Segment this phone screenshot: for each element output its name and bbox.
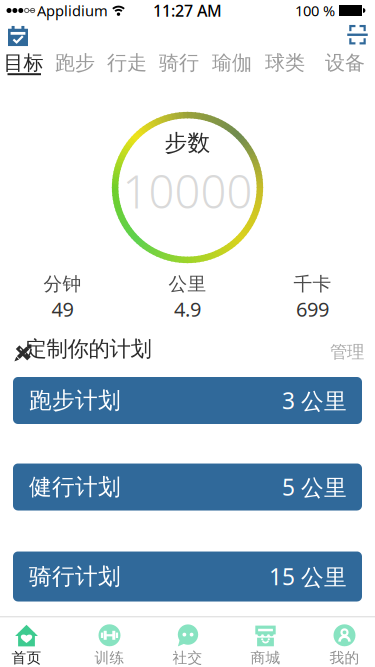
staticText: 社交	[172, 649, 202, 667]
staticText: 商城	[250, 649, 280, 667]
button[interactable]: 管理	[330, 341, 364, 363]
staticText: 目标	[3, 50, 43, 75]
staticText: 10000	[122, 161, 252, 221]
staticText: 球类	[265, 50, 305, 75]
staticText: 瑜伽	[212, 50, 252, 75]
staticText: Applidium	[37, 1, 108, 20]
button[interactable]: 跑步	[55, 50, 95, 75]
staticText: 跑步计划	[29, 387, 121, 414]
button[interactable]: 行走	[107, 50, 147, 75]
staticText: 健行计划	[29, 473, 121, 501]
button[interactable]: 健行计划	[13, 463, 362, 510]
staticText: 5 公里	[282, 472, 347, 502]
staticText: 3 公里	[282, 385, 347, 415]
button[interactable]: 骑行	[159, 50, 199, 75]
staticText: 699	[296, 296, 329, 322]
staticText: 骑行	[159, 50, 199, 75]
staticText: 15 公里	[269, 561, 347, 591]
staticText: 49	[51, 296, 73, 322]
button[interactable]: 社交	[172, 624, 202, 667]
staticText: 行走	[107, 50, 147, 75]
staticText: 首页	[11, 649, 41, 667]
button[interactable]: 我的	[329, 624, 359, 667]
staticText: 跑步	[55, 50, 95, 75]
staticText: 定制你的计划	[25, 336, 151, 362]
button[interactable]: 目标	[3, 50, 43, 75]
button[interactable]: 球类	[265, 50, 305, 75]
button[interactable]: 设备	[325, 50, 365, 75]
button[interactable]: 跑步计划	[13, 377, 362, 424]
button[interactable]: 日程	[8, 25, 28, 46]
staticText: 分钟	[43, 272, 81, 295]
button[interactable]: 训练	[94, 624, 124, 667]
staticText: 设备	[325, 50, 365, 75]
button[interactable]: 扫一扫	[347, 25, 368, 44]
staticText: 11:27 AM	[153, 0, 222, 21]
button[interactable]: 骑行计划	[13, 551, 362, 601]
staticText: 公里	[168, 272, 206, 295]
button[interactable]: 瑜伽	[212, 50, 252, 75]
button[interactable]: 商城	[250, 624, 280, 667]
staticText: 4.9	[174, 296, 201, 322]
staticText: 千卡	[293, 272, 331, 295]
staticText: 训练	[94, 649, 124, 667]
staticText: 骑行计划	[29, 563, 121, 590]
staticText: 步数	[164, 129, 210, 157]
staticText: 我的	[329, 649, 359, 667]
button[interactable]: 首页	[11, 624, 41, 667]
staticText: 100 %	[295, 1, 335, 20]
staticText: 管理	[330, 341, 364, 363]
